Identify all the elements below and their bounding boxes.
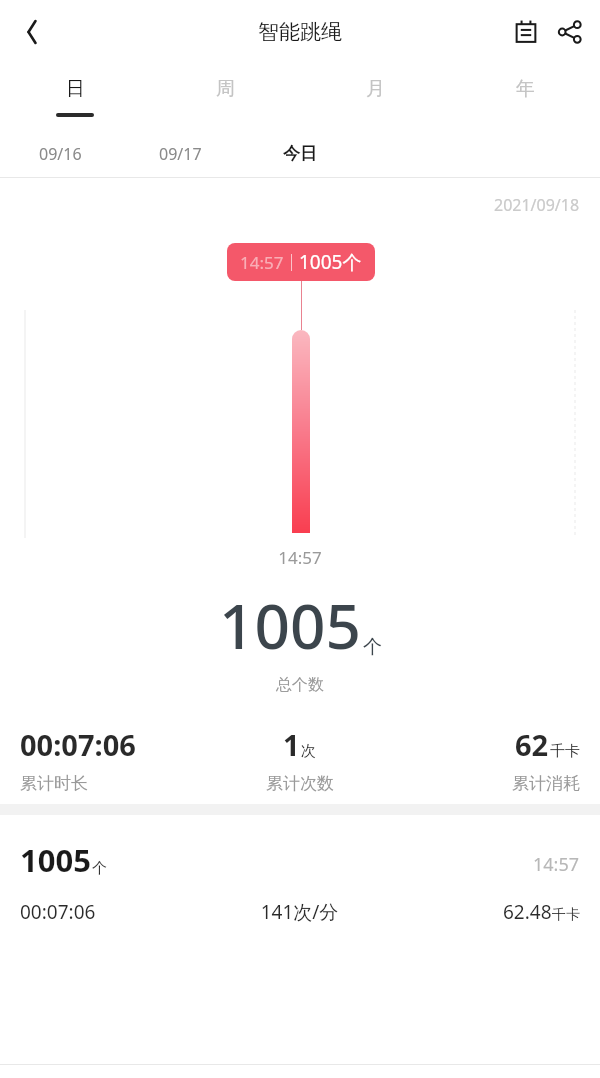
staticText: 1005 bbox=[219, 583, 361, 667]
button[interactable]: 1 bbox=[206, 725, 393, 794]
staticText: 14:57 bbox=[533, 852, 580, 877]
button[interactable]: Share bbox=[548, 10, 592, 54]
button[interactable]: 周 bbox=[150, 64, 300, 130]
staticText: 周 bbox=[216, 77, 235, 101]
staticText: 总个数 bbox=[276, 675, 324, 695]
staticText: 00:07:06 bbox=[20, 725, 136, 764]
button[interactable]: 今日 bbox=[240, 130, 360, 177]
button[interactable]: 日 bbox=[0, 64, 150, 130]
staticText: 2021/09/18 bbox=[494, 194, 580, 216]
staticText: 09/16 bbox=[39, 143, 82, 165]
button[interactable]: 62 bbox=[393, 725, 580, 794]
staticText: 14:57 bbox=[240, 251, 284, 274]
staticText: 14:57 bbox=[0, 546, 600, 569]
staticText: 62.48 bbox=[503, 899, 552, 925]
button[interactable]: Records bbox=[504, 10, 548, 54]
staticText: 次 bbox=[301, 742, 316, 761]
staticText: 累计时长 bbox=[20, 773, 88, 794]
staticText: 141次/分 bbox=[206, 899, 393, 925]
staticText: 09/17 bbox=[159, 143, 202, 165]
staticText: 今日 bbox=[283, 143, 317, 164]
button[interactable]: Back bbox=[8, 8, 56, 56]
staticText: 累计次数 bbox=[266, 773, 334, 794]
staticText: 累计消耗 bbox=[512, 773, 580, 794]
button[interactable]: 1005 bbox=[0, 815, 600, 925]
button[interactable]: 14:57 bbox=[227, 243, 375, 281]
button[interactable]: 00:07:06 bbox=[20, 725, 206, 794]
button[interactable]: 09/17 bbox=[120, 130, 240, 177]
staticText: 千卡 bbox=[552, 906, 580, 924]
staticText: 年 bbox=[516, 77, 535, 101]
staticText: 日 bbox=[66, 77, 85, 101]
staticText: 千卡 bbox=[550, 742, 580, 761]
staticText: 00:07:06 bbox=[20, 899, 206, 925]
staticText: 月 bbox=[366, 77, 385, 101]
staticText: 1005个 bbox=[299, 249, 362, 275]
button[interactable]: 年 bbox=[450, 64, 600, 130]
staticText: 1005 bbox=[20, 839, 91, 881]
staticText: 62 bbox=[515, 725, 549, 764]
button[interactable]: 月 bbox=[300, 64, 450, 130]
staticText: 个 bbox=[363, 635, 382, 659]
staticText: 个 bbox=[92, 859, 107, 878]
button[interactable]: 09/16 bbox=[0, 130, 120, 177]
staticText: 1 bbox=[283, 725, 300, 764]
staticText: 智能跳绳 bbox=[258, 19, 342, 45]
